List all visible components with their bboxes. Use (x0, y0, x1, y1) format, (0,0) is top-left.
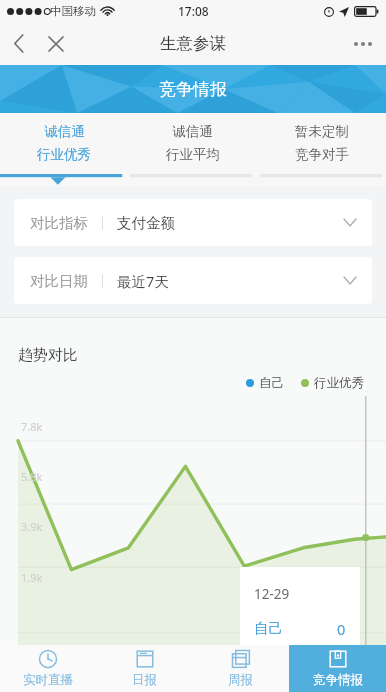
staticText: 行业优秀 (314, 375, 364, 391)
button[interactable]: 日报 (96, 645, 192, 692)
staticText: 最近7天 (117, 271, 169, 291)
staticText: 生意参谋 (160, 33, 226, 54)
staticText: 周报 (228, 672, 253, 688)
staticText: 竞争情报 (313, 672, 363, 688)
button[interactable]: 暂未定制 (257, 113, 386, 186)
staticText: 3.9k (21, 519, 43, 534)
staticText: 7.8k (21, 419, 43, 434)
staticText: 支付金额 (117, 214, 175, 232)
staticText: 1.9k (21, 570, 43, 585)
staticText: 对比指标 (30, 214, 88, 232)
staticText: 暂未定制 (295, 123, 349, 140)
staticText: 中国移动 (50, 4, 96, 18)
staticText: 日报 (132, 672, 157, 688)
button[interactable]: Close (37, 22, 75, 65)
staticText: 行业平均 (166, 146, 220, 163)
button[interactable]: Back (0, 22, 37, 65)
staticText: 竞争情报 (159, 79, 227, 100)
staticText: 竞争对手 (295, 146, 349, 163)
staticText: 17:08 (178, 3, 209, 19)
button[interactable]: 竞争情报 (289, 645, 386, 692)
button[interactable]: 周报 (192, 645, 289, 692)
staticText: 12-29 (254, 585, 290, 603)
staticText: 诚信通 (172, 123, 213, 140)
button[interactable]: 诚信通 (128, 113, 257, 186)
button[interactable]: 诚信通 (0, 113, 128, 186)
button[interactable]: More options (340, 22, 386, 65)
button[interactable]: 对比日期 (14, 257, 372, 304)
staticText: 行业优秀 (37, 146, 91, 163)
staticText: 自己 (259, 375, 284, 391)
button[interactable]: 实时直播 (0, 645, 96, 692)
staticText: 自己 (254, 619, 283, 637)
staticText: 实时直播 (23, 672, 73, 688)
staticText: 趋势对比 (18, 346, 78, 365)
staticText: 对比日期 (30, 272, 88, 290)
button[interactable]: 对比指标 (14, 199, 372, 246)
staticText: 诚信通 (44, 123, 85, 140)
staticText: 5.8k (21, 469, 43, 484)
staticText: 0 (337, 619, 346, 639)
